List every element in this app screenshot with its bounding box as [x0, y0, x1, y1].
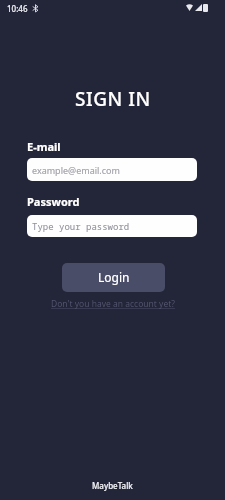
- staticText: MaybeTalk: [92, 480, 133, 491]
- button[interactable]: Don't you have an account yet?: [51, 298, 175, 310]
- staticText: SIGN IN: [75, 86, 151, 112]
- button[interactable]: example@email.com: [27, 158, 197, 181]
- staticText: example@email.com: [32, 164, 120, 176]
- button[interactable]: Type your password: [27, 215, 197, 237]
- button[interactable]: Login: [62, 263, 165, 292]
- staticText: Password: [27, 194, 80, 209]
- staticText: Login: [98, 269, 130, 285]
- staticText: Type your password: [32, 220, 130, 232]
- staticText: 10:46: [7, 3, 28, 14]
- staticText: E-mail: [27, 139, 61, 154]
